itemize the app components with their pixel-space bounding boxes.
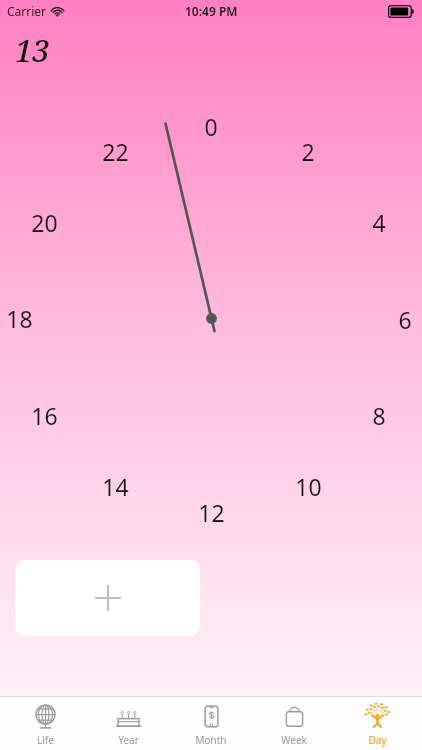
staticText: 0 xyxy=(204,111,218,141)
staticText: Day xyxy=(368,733,387,747)
staticText: 4 xyxy=(372,207,386,237)
staticText: 22 xyxy=(102,136,129,166)
staticText: 8 xyxy=(372,400,386,430)
button[interactable]: Week xyxy=(256,701,332,747)
staticText: 2 xyxy=(301,136,315,166)
staticText: 6 xyxy=(398,304,412,334)
button[interactable]: 13 xyxy=(12,28,53,72)
button[interactable]: Day xyxy=(339,701,415,747)
button[interactable]: Life xyxy=(7,701,83,747)
staticText: 20 xyxy=(31,207,58,237)
button[interactable]: Year xyxy=(90,701,166,747)
staticText: 12 xyxy=(198,497,225,527)
staticText: Year xyxy=(118,733,139,747)
staticText: Month xyxy=(195,733,227,747)
staticText: 14 xyxy=(102,471,129,501)
staticText: 13 xyxy=(15,29,50,71)
staticText: Week xyxy=(281,733,307,747)
button[interactable]: Add event xyxy=(15,560,200,636)
staticText: 16 xyxy=(31,400,58,430)
staticText: Carrier xyxy=(7,3,47,19)
staticText: 10:49 PM xyxy=(185,3,238,19)
staticText: 10 xyxy=(295,471,322,501)
staticText: Life xyxy=(37,733,54,747)
staticText: 18 xyxy=(6,303,33,333)
button[interactable]: Month xyxy=(173,701,249,747)
